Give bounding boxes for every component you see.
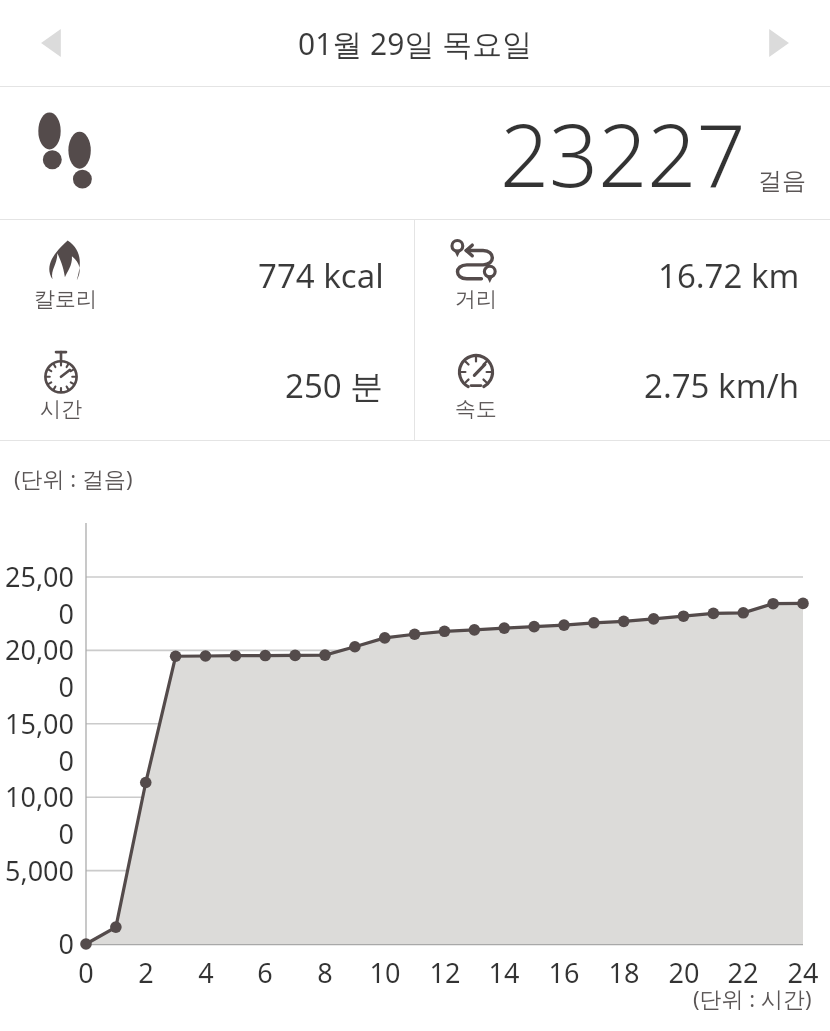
staticText: 774 kcal (258, 253, 384, 298)
staticText: 8 (295, 954, 355, 991)
button[interactable]: 속도 (415, 330, 830, 440)
button[interactable]: 거리 (415, 220, 830, 330)
staticText: 걸음 (758, 166, 806, 196)
staticText: 0 (0, 925, 74, 962)
staticText: 4 (176, 954, 236, 991)
staticText: (단위 : 걸음) (14, 463, 133, 493)
staticText: 23227 (500, 95, 746, 212)
button[interactable]: Previous day (26, 14, 84, 72)
staticText: 2.75 km/h (644, 363, 800, 408)
button[interactable]: 칼로리 (0, 220, 414, 330)
staticText: 10 (355, 954, 415, 991)
staticText: 25,000 (0, 558, 74, 632)
staticText: 250 분 (285, 363, 384, 408)
staticText: 속도 (455, 396, 497, 422)
staticText: 15,000 (0, 705, 74, 779)
staticText: 시간 (40, 396, 82, 422)
staticText: (단위 : 시간) (693, 983, 812, 1013)
staticText: 10,000 (0, 778, 74, 852)
staticText: 18 (594, 954, 654, 991)
staticText: 칼로리 (34, 286, 97, 312)
staticText: 22 (713, 954, 773, 991)
staticText: 01월 29일 목요일 (298, 23, 533, 64)
button[interactable]: 23227 (0, 87, 830, 219)
staticText: 16 (534, 954, 594, 991)
staticText: 14 (474, 954, 534, 991)
staticText: 16.72 km (658, 253, 800, 298)
staticText: 24 (773, 954, 830, 991)
staticText: 거리 (455, 286, 497, 312)
staticText: 5,000 (0, 852, 74, 889)
button[interactable]: Next day (746, 14, 804, 72)
button[interactable]: 시간 (0, 330, 414, 440)
staticText: 6 (235, 954, 295, 991)
staticText: 0 (56, 954, 116, 991)
staticText: 20,000 (0, 631, 74, 705)
staticText: 12 (415, 954, 475, 991)
staticText: 20 (654, 954, 714, 991)
staticText: 2 (116, 954, 176, 991)
